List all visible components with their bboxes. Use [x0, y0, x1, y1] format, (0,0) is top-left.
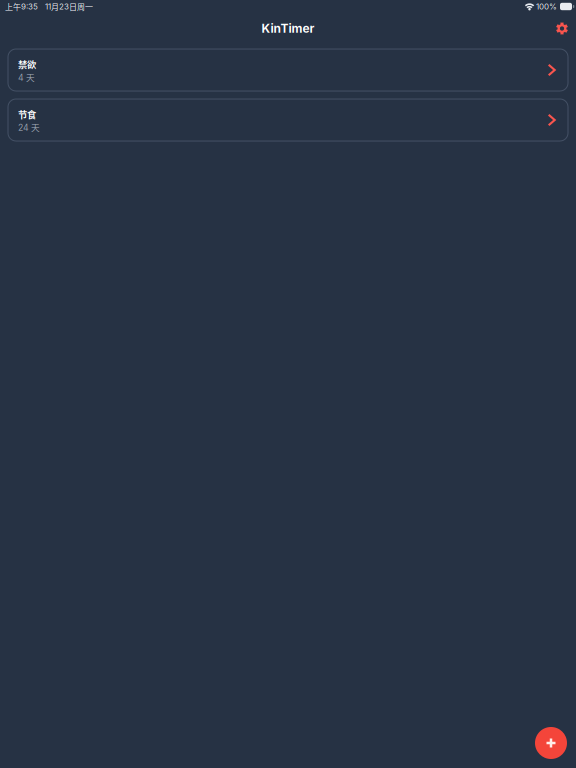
staticText: 禁欲: [18, 57, 36, 71]
staticText: 11月23日周一: [45, 1, 93, 12]
staticText: 100%: [536, 2, 557, 11]
button[interactable]: 节食: [8, 99, 568, 141]
staticText: 节食: [18, 107, 36, 121]
button[interactable]: Settings: [548, 14, 576, 42]
button[interactable]: Add timer: [529, 721, 573, 765]
button[interactable]: 禁欲: [8, 49, 568, 91]
staticText: 4 天: [18, 71, 35, 83]
staticText: KinTimer: [261, 21, 314, 36]
staticText: 上午9:35: [5, 1, 38, 12]
staticText: 24 天: [18, 121, 40, 133]
